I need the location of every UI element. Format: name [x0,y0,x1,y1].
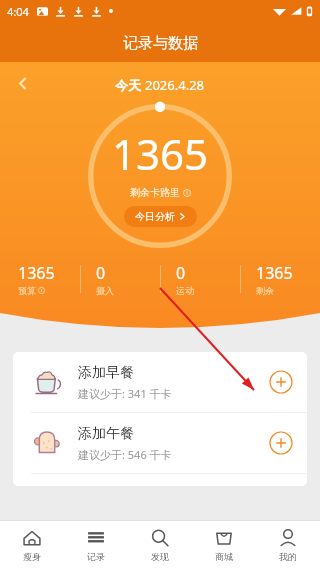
staticText: 1365 [18,262,55,284]
staticText: 建议少于: 546 千卡 [78,447,172,462]
staticText: 预算 [18,285,36,296]
staticText: 摄入 [96,285,114,296]
staticText: 添加午餐 [78,425,134,443]
staticText: 添加早餐 [78,364,134,382]
staticText: 发现 [151,551,169,562]
staticText: 记录 [87,551,105,562]
staticText: 商城 [215,551,233,562]
button[interactable]: 发现 [128,521,192,568]
button[interactable]: 添加午餐 [13,413,307,473]
staticText: 瘦身 [23,551,41,562]
staticText: 建议少于: 341 千卡 [78,386,172,401]
button[interactable]: 添加早餐 [13,352,307,412]
staticText: 剩余 [256,285,274,296]
staticText: 4:04 [7,4,29,19]
button[interactable]: 返回 [5,66,39,100]
staticText: 运动 [176,285,194,296]
staticText: 剩余卡路里 [130,186,180,199]
button[interactable]: 添加 [269,431,293,455]
staticText: 0 [176,262,186,284]
button[interactable]: 添加 [269,370,293,394]
button[interactable]: 记录 [64,521,128,568]
staticText: 记录与数据 [123,34,198,53]
button[interactable]: 商城 [192,521,256,568]
staticText: 今日分析 [135,210,175,223]
button[interactable]: 今日分析 [124,206,197,227]
staticText: 我的 [279,551,297,562]
staticText: 0 [96,262,106,284]
staticText: 1365 [256,262,293,284]
button[interactable]: 瘦身 [0,521,64,568]
staticText: 1365 [112,125,209,182]
button[interactable]: 我的 [256,521,320,568]
staticText: 今天 [115,76,145,94]
staticText: 2026.4.28 [145,76,205,94]
